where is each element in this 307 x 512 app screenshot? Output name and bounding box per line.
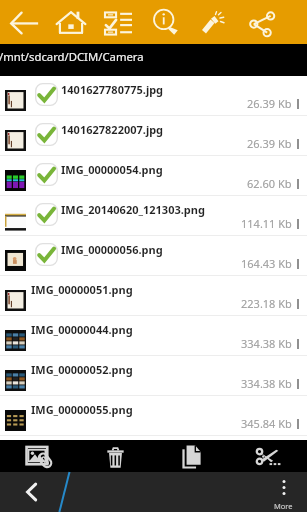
- staticText: 345.84 Kb: [241, 416, 292, 431]
- staticText: 1401627780775.jpg: [61, 82, 164, 97]
- button[interactable]: 1401627780775.jpg: [0, 76, 307, 116]
- button[interactable]: More options: [260, 472, 307, 512]
- button[interactable]: Flashlight: [189, 0, 235, 44]
- staticText: 26.39 Kb: [247, 136, 292, 151]
- button[interactable]: Back: [0, 472, 62, 512]
- staticText: IMG_00000051.png: [31, 282, 133, 297]
- button[interactable]: Select items: [95, 0, 141, 44]
- staticText: 334.38 Kb: [241, 376, 292, 391]
- button[interactable]: /mnt/sdcard/DCIM/Camera: [0, 44, 307, 76]
- button[interactable]: Search: [143, 0, 189, 44]
- button[interactable]: IMG_00000051.png: [0, 276, 307, 316]
- button[interactable]: IMG_00000055.png: [0, 396, 307, 436]
- staticText: 164.43 Kb: [241, 256, 292, 271]
- staticText: IMG_00000054.png: [61, 162, 163, 177]
- button[interactable]: Share: [239, 0, 285, 44]
- staticText: More: [274, 501, 293, 511]
- staticText: 26.39 Kb: [247, 96, 292, 111]
- button[interactable]: Delete: [81, 440, 149, 472]
- button[interactable]: Attach image: [6, 440, 74, 472]
- staticText: IMG_00000056.png: [61, 242, 163, 257]
- button[interactable]: 1401627822007.jpg: [0, 116, 307, 156]
- button[interactable]: Home: [48, 0, 94, 44]
- button[interactable]: Cut: [235, 440, 303, 472]
- button[interactable]: IMG_00000054.png: [0, 156, 307, 196]
- staticText: IMG_00000044.png: [31, 322, 133, 337]
- staticText: /mnt/sdcard/DCIM/Camera: [0, 49, 144, 64]
- staticText: 62.60 Kb: [247, 176, 292, 191]
- staticText: 114.11 Kb: [241, 216, 292, 231]
- button[interactable]: IMG_00000056.png: [0, 236, 307, 276]
- button[interactable]: Back: [1, 0, 47, 44]
- staticText: 1401627822007.jpg: [61, 122, 164, 137]
- button[interactable]: IMG_00000052.png: [0, 356, 307, 396]
- staticText: IMG_00000052.png: [31, 362, 133, 377]
- staticText: IMG_20140620_121303.png: [61, 202, 205, 217]
- staticText: 334.38 Kb: [241, 336, 292, 351]
- button[interactable]: Copy: [157, 440, 225, 472]
- button[interactable]: IMG_00000044.png: [0, 316, 307, 356]
- staticText: 223.18 Kb: [241, 296, 292, 311]
- button[interactable]: IMG_20140620_121303.png: [0, 196, 307, 236]
- staticText: IMG_00000055.png: [31, 402, 133, 417]
